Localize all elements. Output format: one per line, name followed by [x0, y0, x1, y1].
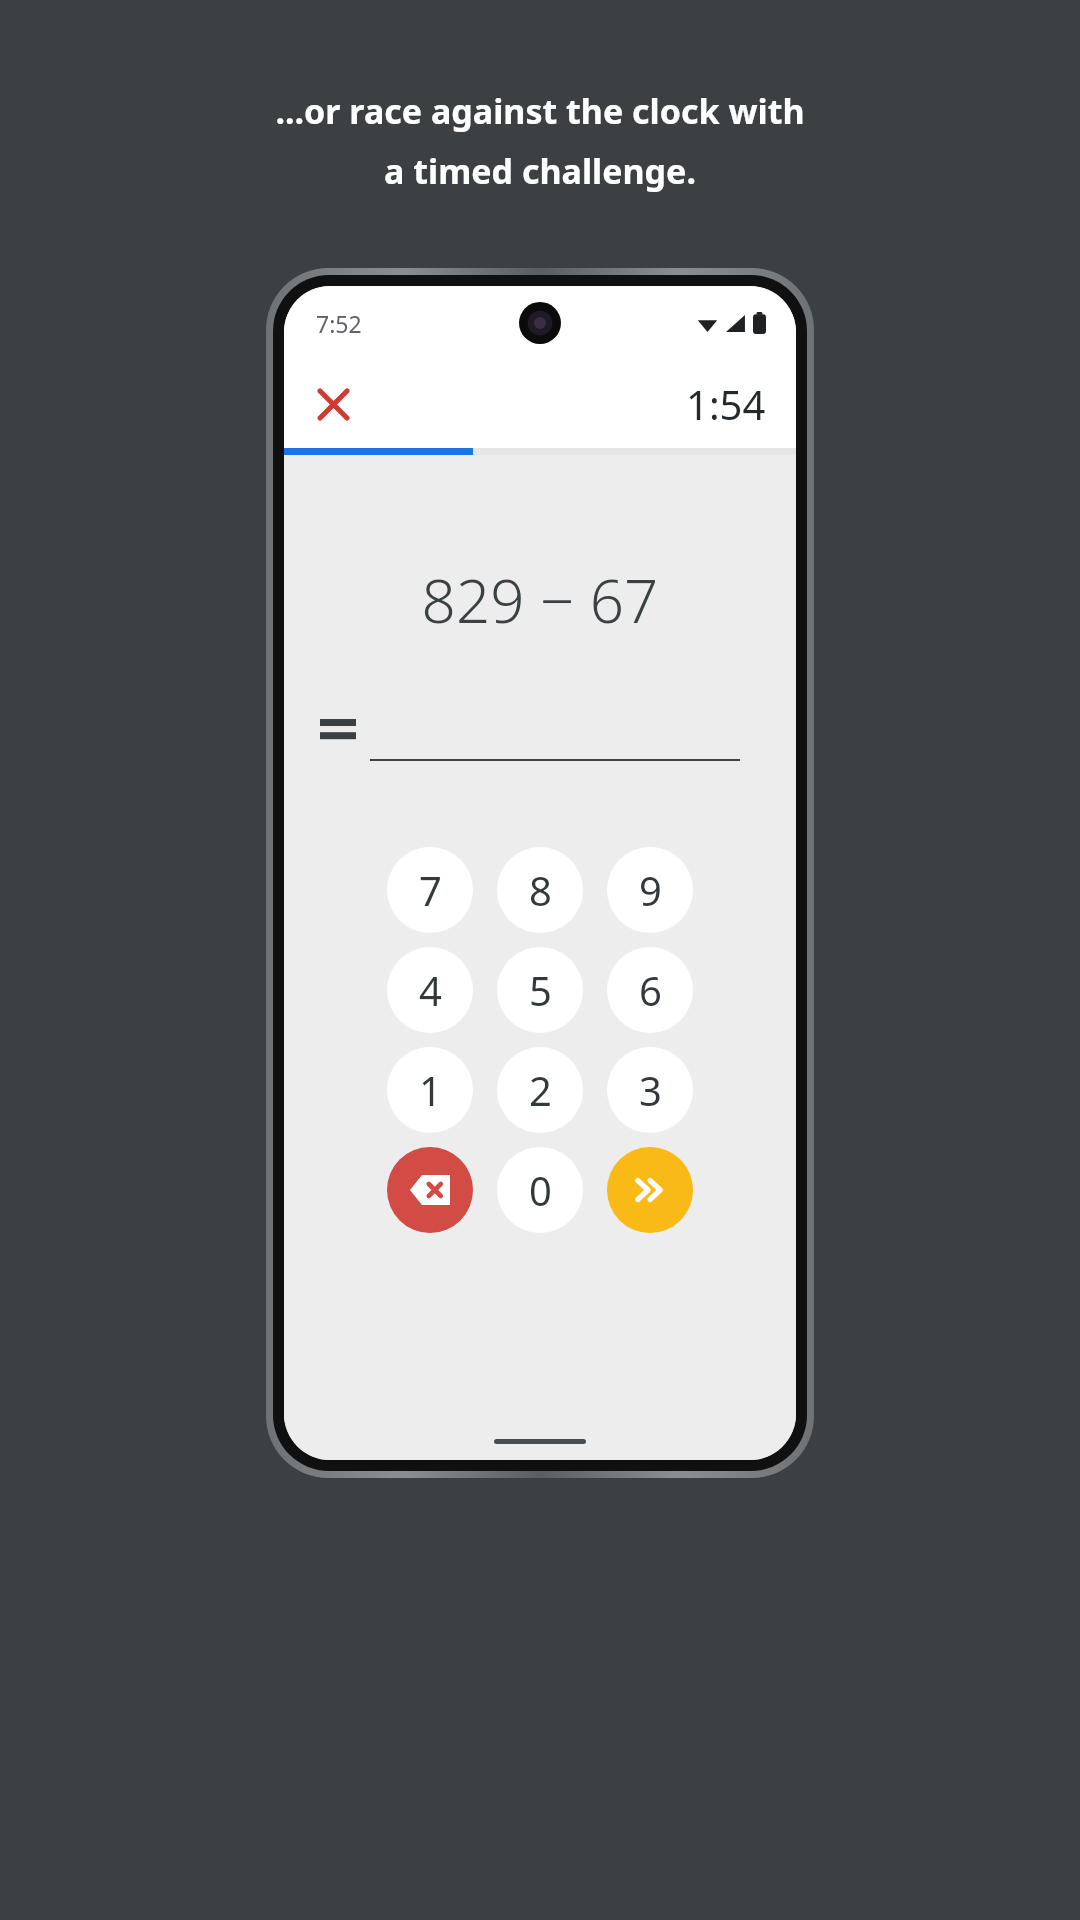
staticText: 1:54: [686, 377, 766, 431]
button[interactable]: 9: [607, 847, 693, 933]
button[interactable]: 2: [497, 1047, 583, 1133]
button[interactable]: 3: [607, 1047, 693, 1133]
button[interactable]: 6: [607, 947, 693, 1033]
button[interactable]: 7: [387, 847, 473, 933]
staticText: 829 − 67: [284, 559, 796, 641]
staticText: 2: [529, 1063, 552, 1117]
button[interactable]: Submit: [607, 1147, 693, 1233]
staticText: 8: [529, 863, 552, 917]
staticText: 5: [529, 963, 552, 1017]
staticText: 7:52: [316, 308, 362, 339]
staticText: 1: [419, 1063, 442, 1117]
button[interactable]: 4: [387, 947, 473, 1033]
staticText: 4: [419, 963, 442, 1017]
button[interactable]: 1: [387, 1047, 473, 1133]
staticText: 9: [639, 863, 662, 917]
button[interactable]: 8: [497, 847, 583, 933]
staticText: 3: [639, 1063, 662, 1117]
button[interactable]: 0: [497, 1147, 583, 1233]
button[interactable]: 5: [497, 947, 583, 1033]
staticText: 6: [639, 963, 662, 1017]
button[interactable]: Close: [302, 373, 364, 435]
staticText: 7: [419, 863, 442, 917]
staticText: 0: [529, 1163, 552, 1217]
button[interactable]: Delete: [387, 1147, 473, 1233]
staticText: ...or race against the clock with a time…: [0, 88, 1080, 194]
